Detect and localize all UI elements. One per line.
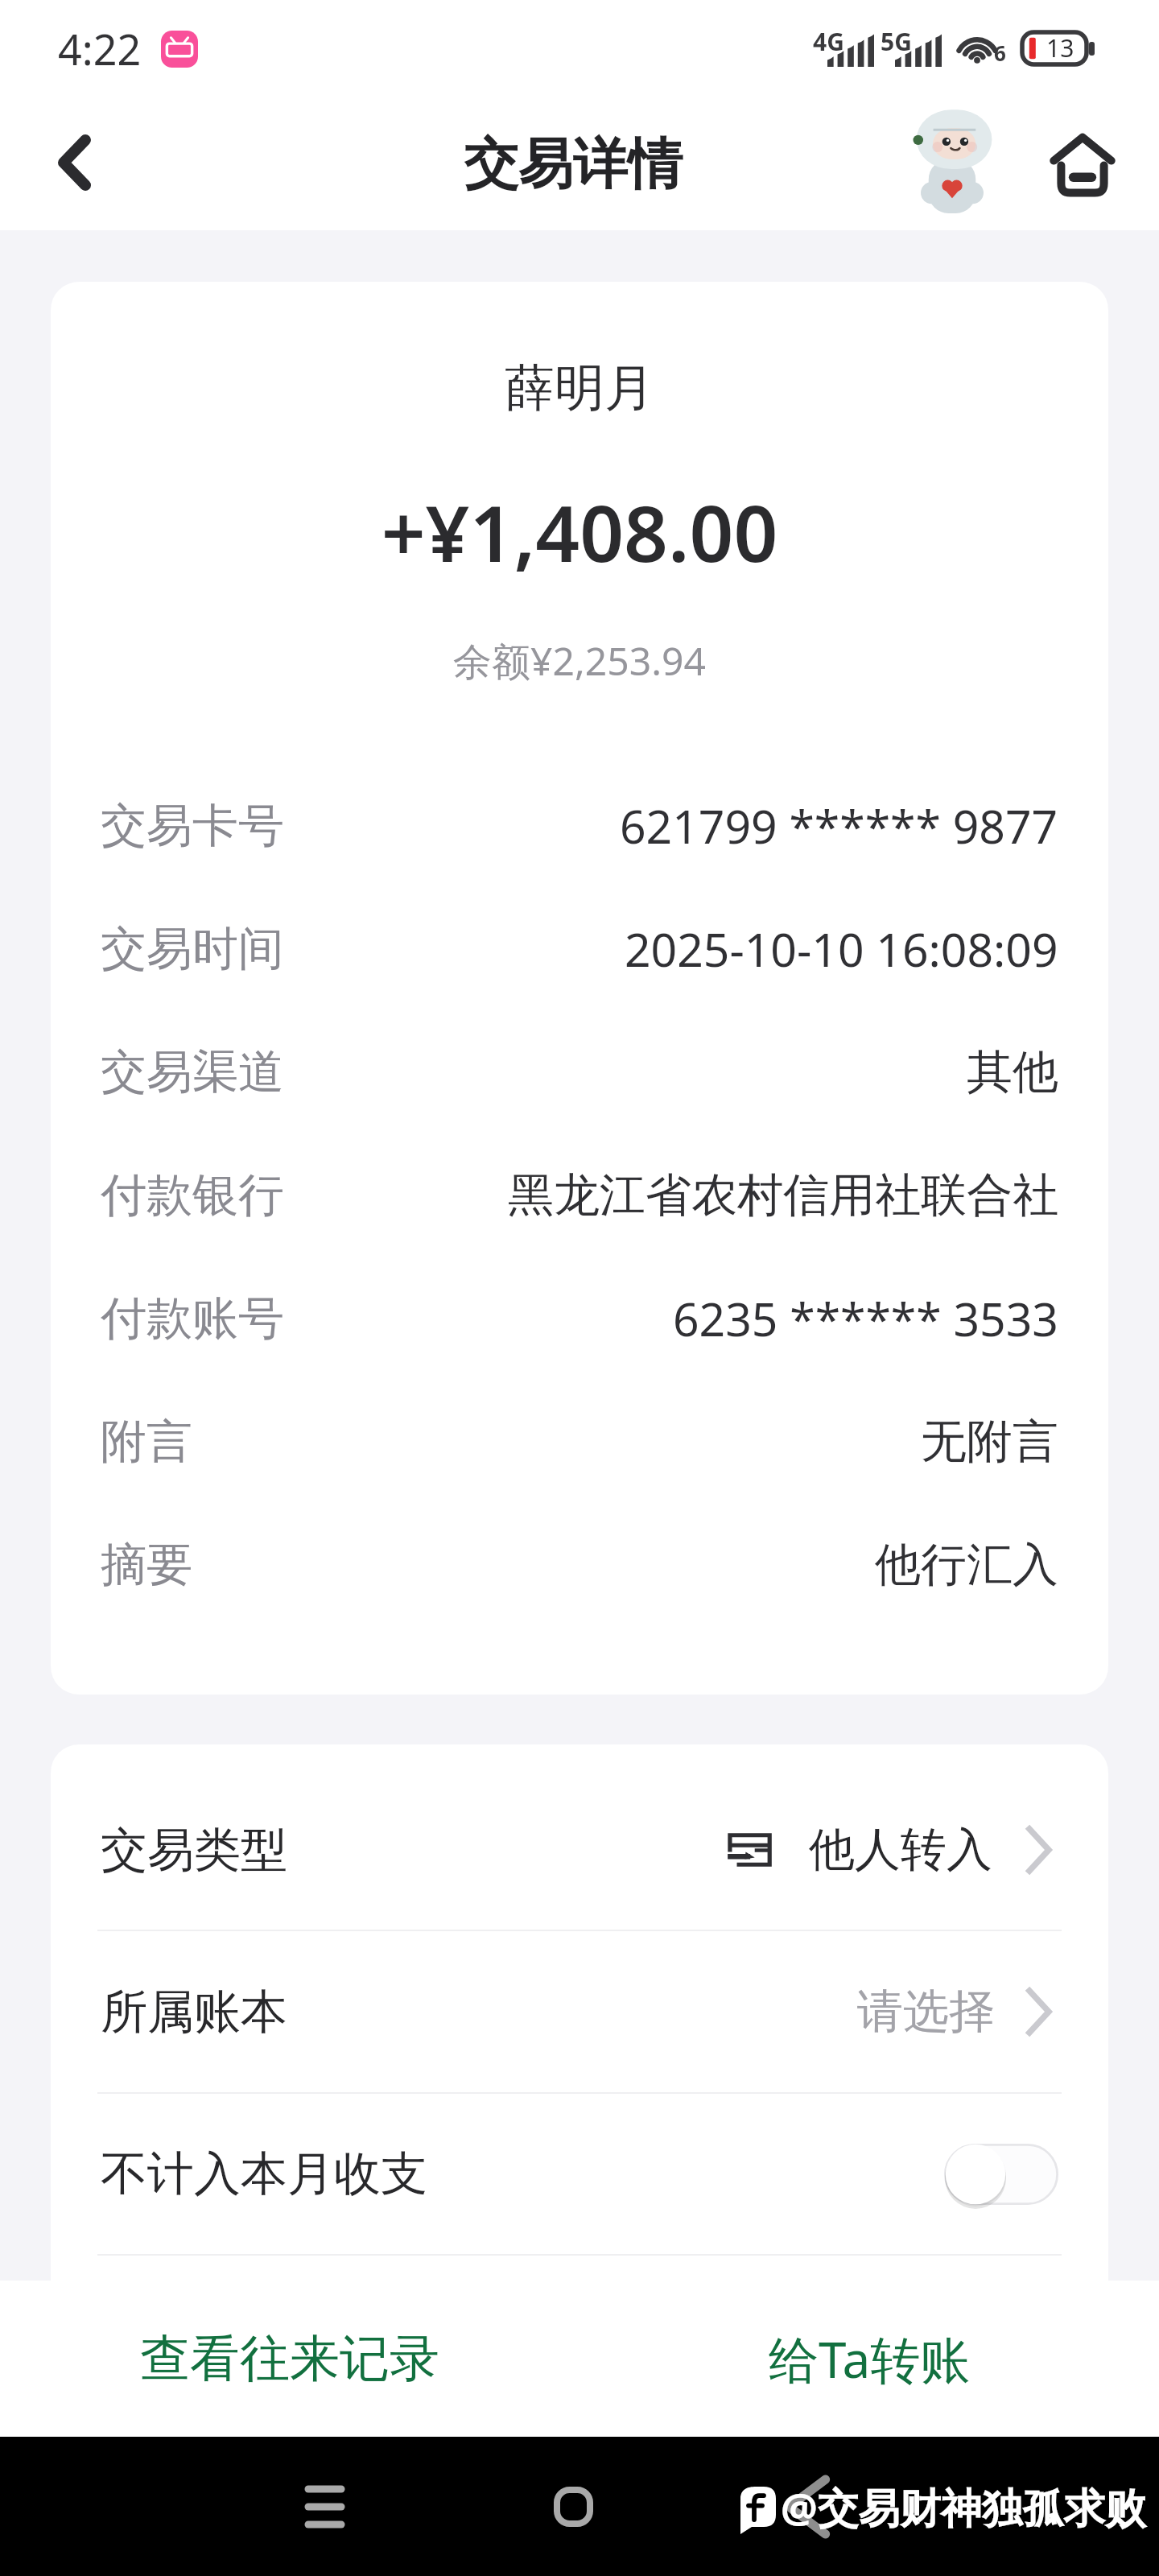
staticText: 4:22 <box>58 20 142 77</box>
button[interactable]: 不计入本月收支 <box>51 2094 1108 2254</box>
button[interactable]: Exclude from monthly total <box>944 2144 1058 2205</box>
staticText: 6 <box>994 39 1006 67</box>
staticText: 余额¥2,253.94 <box>51 634 1108 687</box>
staticText: 交易时间 <box>101 920 284 978</box>
button[interactable]: Back <box>32 121 116 204</box>
staticText: 交易类型 <box>101 1821 287 1880</box>
staticText: 付款银行 <box>101 1166 284 1224</box>
staticText: 黑龙江省农村信用社联合社 <box>508 1166 1058 1224</box>
staticText: 附言 <box>101 1413 192 1471</box>
staticText: 他行汇入 <box>875 1536 1058 1594</box>
staticText: 请选择 <box>857 1983 995 2041</box>
staticText: 4G <box>813 25 844 58</box>
staticText: 摘要 <box>101 1536 192 1594</box>
staticText: 6235 ****** 3533 <box>673 1287 1058 1350</box>
staticText: 付款账号 <box>101 1290 284 1348</box>
staticText: 交易卡号 <box>101 797 284 855</box>
staticText: 不计入本月收支 <box>101 2145 427 2203</box>
staticText: 交易渠道 <box>101 1043 284 1101</box>
staticText: 薛明月 <box>51 357 1108 419</box>
button[interactable]: Home <box>534 2468 612 2545</box>
staticText: 其他 <box>967 1043 1058 1101</box>
staticText: +¥1,408.00 <box>51 479 1108 584</box>
staticText: 给Ta转账 <box>769 2325 971 2393</box>
staticText: 13 <box>1046 31 1074 64</box>
staticText: 所属账本 <box>101 1983 287 2041</box>
button[interactable]: Recent apps <box>286 2468 363 2545</box>
button[interactable]: 所属账本 <box>51 1931 1108 2092</box>
button[interactable]: 查看往来记录 <box>0 2281 579 2437</box>
button[interactable]: Assistant <box>896 99 1008 220</box>
button[interactable]: Home <box>1042 115 1123 204</box>
staticText: 交易详情 <box>464 130 683 200</box>
staticText: 5G <box>881 25 912 58</box>
staticText: 2025-10-10 16:08:09 <box>625 918 1058 980</box>
staticText: 无附言 <box>921 1413 1058 1471</box>
staticText: 621799 ****** 9877 <box>620 795 1058 857</box>
button[interactable]: 交易类型 <box>51 1744 1108 1930</box>
button[interactable]: 给Ta转账 <box>579 2281 1159 2437</box>
staticText: @交易财神独孤求败 <box>781 2479 1146 2535</box>
staticText: 他人转入 <box>809 1821 992 1879</box>
staticText: 查看往来记录 <box>140 2327 439 2390</box>
